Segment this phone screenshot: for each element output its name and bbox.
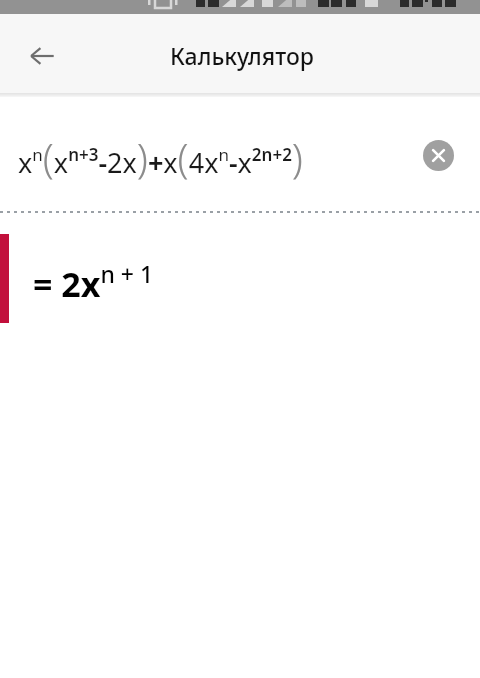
staticText: xn(xn+3-2x)+x(4xn-x2n+2) <box>18 130 303 184</box>
button[interactable]: Clear <box>414 131 462 179</box>
staticText: Калькулятор <box>170 40 315 71</box>
button[interactable]: Back <box>18 32 66 80</box>
staticText: = 2xn + 1 <box>33 258 154 307</box>
